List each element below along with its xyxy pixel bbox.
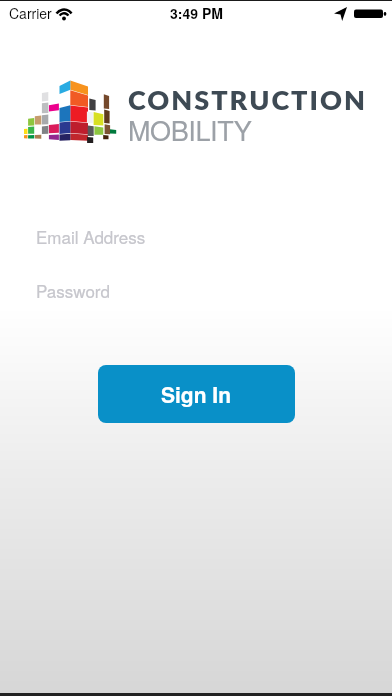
staticText: CONSTRUCTION <box>128 83 367 115</box>
staticText: Password <box>36 278 110 302</box>
staticText: Carrier <box>9 3 52 23</box>
button[interactable]: Password <box>20 270 392 312</box>
button[interactable]: Sign In <box>98 365 295 423</box>
staticText: Sign In <box>161 379 232 409</box>
staticText: MOBILITY <box>128 110 252 149</box>
button[interactable]: Email Address <box>20 216 392 258</box>
staticText: 3:49 PM <box>170 3 223 23</box>
staticText: Email Address <box>36 224 146 248</box>
